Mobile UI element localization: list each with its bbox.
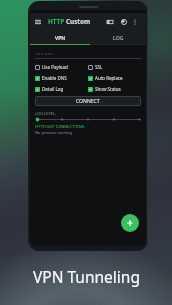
staticText: Enable DNS	[42, 75, 67, 81]
staticText: VPN	[55, 34, 66, 41]
staticText: VPN Tunneling	[33, 266, 140, 287]
button[interactable]: More options	[130, 17, 139, 26]
staticText: start pass	[35, 51, 54, 56]
staticText: Use Payload	[42, 64, 68, 70]
button[interactable]: Show Status	[88, 86, 141, 92]
button[interactable]: Add configuration	[121, 214, 139, 232]
staticText: Custom	[66, 17, 91, 26]
staticText: Detail Log	[42, 86, 64, 92]
staticText: LOG	[113, 34, 124, 41]
staticText: HTTP/UDP CONNECT/DNS:	[35, 124, 86, 129]
button[interactable]: Check connection	[118, 16, 129, 27]
button[interactable]: VPN	[30, 30, 90, 44]
button[interactable]: Import config	[104, 16, 115, 27]
button[interactable]: SSL	[88, 64, 141, 70]
staticText: No process running	[35, 130, 73, 135]
button[interactable]: Detail Log	[35, 86, 88, 92]
staticText: Auto Replace	[95, 75, 123, 81]
button[interactable]: Use Payload	[35, 64, 88, 70]
button[interactable]: Menu	[33, 17, 43, 27]
staticText: HTTP	[48, 17, 66, 26]
staticText: CONNECT	[76, 98, 100, 105]
staticText: LOG LEVEL:	[35, 111, 57, 116]
button[interactable]: CONNECT	[35, 96, 141, 106]
staticText: SSL	[95, 64, 103, 70]
button[interactable]: LOG	[90, 30, 146, 44]
button[interactable]: Enable DNS	[35, 75, 88, 81]
staticText: Show Status	[95, 86, 121, 92]
button[interactable]: Auto Replace	[88, 75, 141, 81]
button[interactable]	[35, 117, 141, 122]
